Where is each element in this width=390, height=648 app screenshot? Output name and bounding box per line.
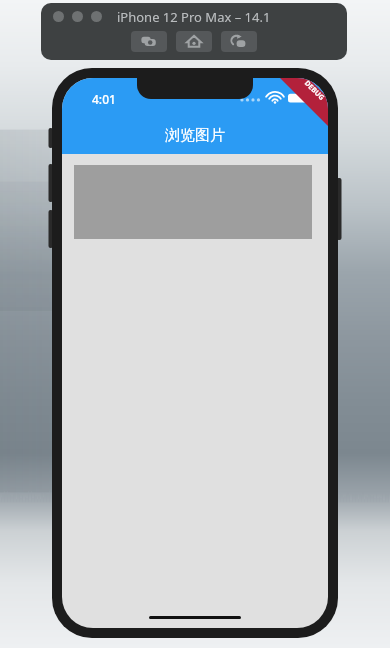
staticText: iPhone 12 Pro Max – 14.1 [117, 8, 271, 26]
staticText: 浏览图片 [165, 126, 225, 145]
button[interactable]: Zoom [91, 11, 102, 22]
staticText: 4:01 [92, 91, 116, 107]
staticText: DEBUG [302, 79, 327, 103]
button[interactable]: Minimize [72, 11, 83, 22]
button[interactable]: Home [176, 31, 212, 52]
button[interactable]: Rotate [221, 31, 257, 52]
button[interactable]: Close [53, 11, 64, 22]
button[interactable]: Screenshot [131, 31, 167, 52]
